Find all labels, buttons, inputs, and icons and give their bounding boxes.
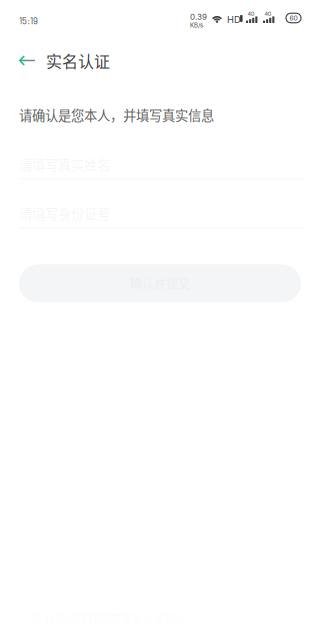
staticText: 0.39 [190, 12, 207, 22]
button[interactable]: 返回 [0, 43, 46, 78]
button[interactable]: 实名认证 [46, 40, 110, 81]
staticText: 15:19 [19, 15, 38, 26]
staticText: 请填写身份证号 [19, 204, 110, 223]
staticText: 4G [264, 10, 271, 17]
staticText: 60 [289, 14, 297, 22]
staticText: 请填写真实姓名 [19, 155, 110, 174]
staticText: 4G [247, 10, 254, 17]
staticText: KB/s [190, 22, 203, 29]
staticText: 请确认是您本人，并填写真实信息 [19, 105, 214, 124]
staticText: HD [227, 14, 241, 25]
staticText: 实名认证 [46, 49, 110, 72]
